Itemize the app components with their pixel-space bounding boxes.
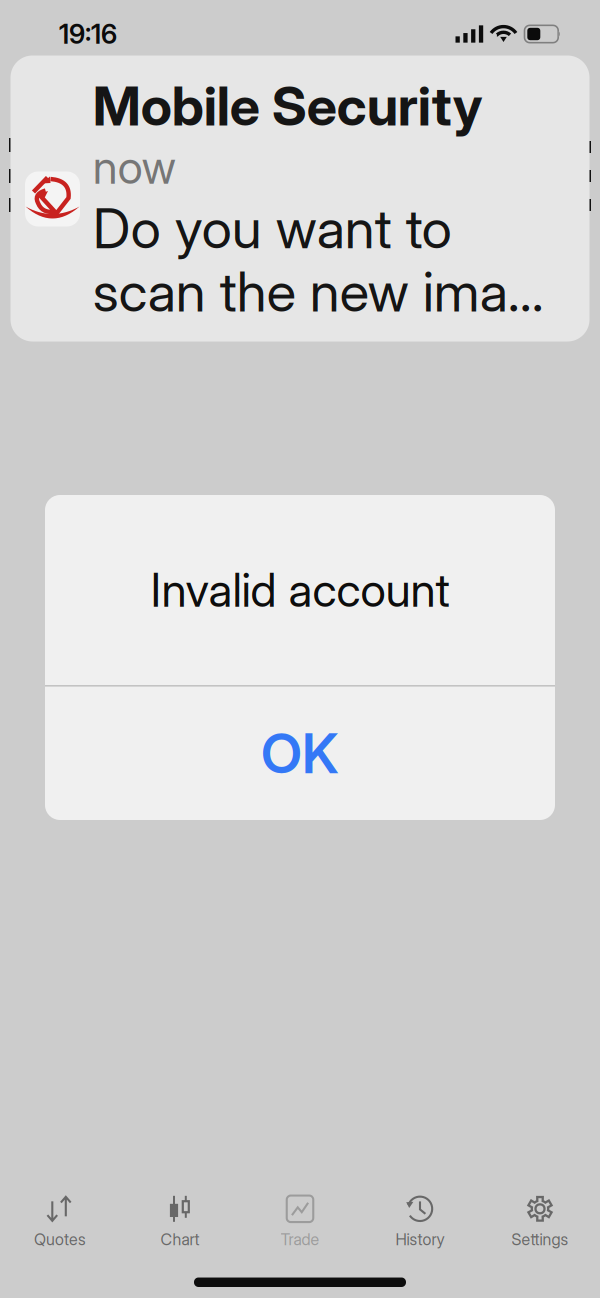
staticText: Trade xyxy=(280,1230,319,1249)
button[interactable]: Settings xyxy=(480,1191,600,1253)
staticText: Invalid account xyxy=(150,562,449,618)
button[interactable]: OK xyxy=(45,687,555,820)
staticText: Do you want to xyxy=(93,195,452,261)
staticText: History xyxy=(395,1230,444,1249)
button[interactable]: Trade xyxy=(240,1191,360,1253)
staticText: Quotes xyxy=(34,1230,86,1249)
staticText: 19:16 xyxy=(59,18,117,50)
staticText: OK xyxy=(261,720,339,786)
staticText: Settings xyxy=(511,1230,568,1249)
button[interactable]: Mobile Security xyxy=(10,55,589,341)
button[interactable]: Quotes xyxy=(0,1191,120,1253)
staticText: Mobile Security xyxy=(93,73,483,138)
staticText: Chart xyxy=(160,1230,199,1249)
button[interactable]: Chart xyxy=(120,1191,240,1253)
staticText: now xyxy=(93,140,176,195)
staticText: scan the new ima… xyxy=(93,259,544,325)
button[interactable]: History xyxy=(360,1191,480,1253)
